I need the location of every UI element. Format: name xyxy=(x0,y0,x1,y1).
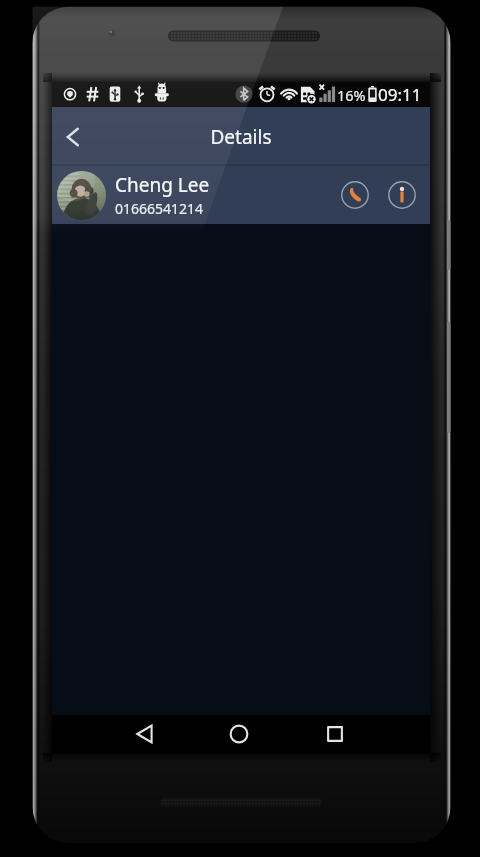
staticText: 16% xyxy=(337,85,366,105)
button[interactable]: Info xyxy=(385,178,419,212)
staticText: Cheng Lee xyxy=(115,172,210,198)
button[interactable]: Recents xyxy=(316,715,354,753)
staticText: 09:11 xyxy=(378,83,422,106)
button[interactable]: Call xyxy=(338,178,372,212)
button[interactable]: Home xyxy=(220,715,258,753)
staticText: 01666541214 xyxy=(115,199,204,218)
staticText: Details xyxy=(210,124,272,150)
button[interactable]: Back xyxy=(126,715,164,753)
button[interactable]: Cheng Lee xyxy=(52,166,430,224)
button[interactable]: Back xyxy=(52,107,96,166)
